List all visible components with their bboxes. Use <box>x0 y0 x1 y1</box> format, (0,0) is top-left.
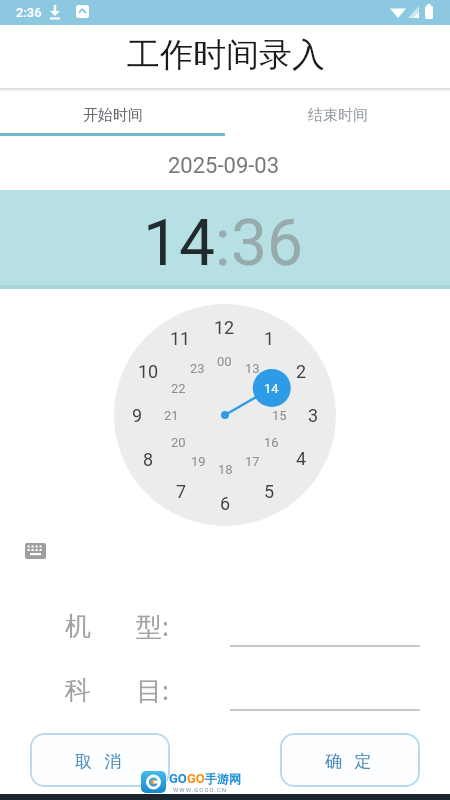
staticText: 型: <box>136 608 169 644</box>
staticText: 00 <box>217 354 232 369</box>
staticText: GO <box>187 771 205 786</box>
staticText: 18 <box>218 462 233 477</box>
staticText: 13 <box>245 361 260 376</box>
staticText: 9 <box>132 405 143 426</box>
staticText: 23 <box>190 361 205 376</box>
staticText: 3 <box>308 405 319 426</box>
staticText: 6 <box>220 493 231 514</box>
staticText: 确 定 <box>325 749 376 772</box>
staticText: 取 消 <box>75 749 126 772</box>
staticText: 20 <box>171 435 186 450</box>
staticText: 11 <box>170 328 191 349</box>
staticText: 机 <box>65 610 91 643</box>
staticText: 22 <box>171 381 186 396</box>
staticText: 手游网 <box>205 771 241 786</box>
button[interactable] <box>40 600 430 652</box>
staticText: 17 <box>245 454 260 469</box>
staticText: 14 <box>143 206 215 281</box>
staticText: 36 <box>231 206 303 281</box>
staticText: 开始时间 <box>83 106 143 125</box>
staticText: 1 <box>264 328 275 349</box>
staticText: 8 <box>143 449 154 470</box>
staticText: 15 <box>272 408 287 423</box>
staticText: 2025-09-03 <box>168 153 280 179</box>
staticText: 目: <box>136 672 169 708</box>
staticText: 工作时间录入 <box>127 34 325 76</box>
staticText: 19 <box>191 454 206 469</box>
staticText: WWW.GOGO.CN <box>173 786 228 793</box>
staticText: 2 <box>296 361 307 382</box>
staticText: GO <box>169 771 187 786</box>
button[interactable] <box>18 536 54 566</box>
staticText: 2:36 <box>16 5 42 20</box>
button[interactable]: 确 定 <box>280 733 420 787</box>
staticText: 16 <box>264 435 279 450</box>
staticText: 12 <box>214 317 235 338</box>
button[interactable]: 结束时间 <box>225 92 450 138</box>
button[interactable]: GO <box>138 768 258 796</box>
staticText: 5 <box>264 481 275 502</box>
staticText: 4 <box>296 448 307 469</box>
button[interactable]: 开始时间 <box>0 92 225 138</box>
staticText: 21 <box>164 408 179 423</box>
staticText: 14 <box>264 381 279 396</box>
staticText: : <box>215 206 231 281</box>
staticText: 科 <box>65 674 91 707</box>
staticText: 7 <box>176 481 187 502</box>
button[interactable]: 取 消 <box>30 733 170 787</box>
staticText: 结束时间 <box>308 106 368 125</box>
button[interactable] <box>40 664 430 716</box>
staticText: 10 <box>138 361 159 382</box>
